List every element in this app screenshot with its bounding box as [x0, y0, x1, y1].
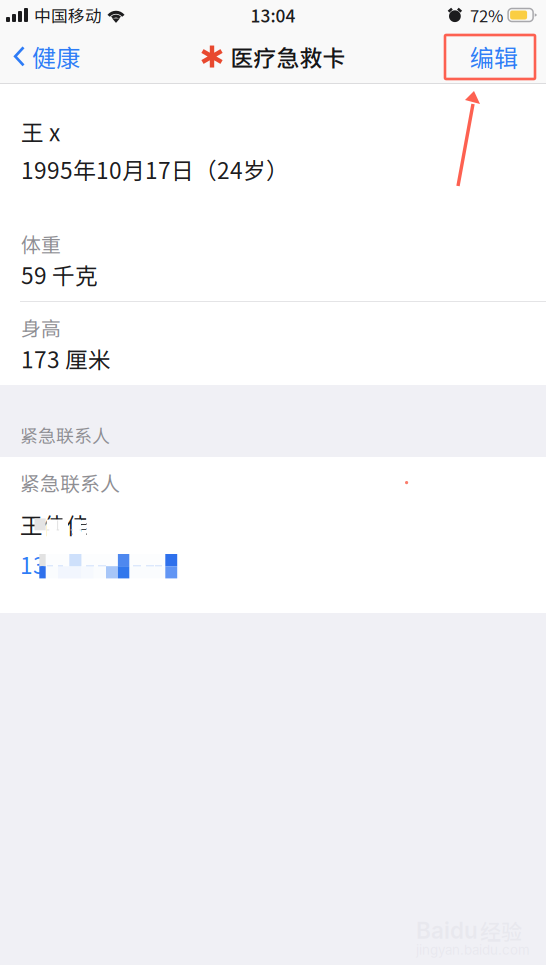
- staticText: 王 x: [21, 115, 60, 148]
- staticText: 紧急联系人: [20, 468, 120, 497]
- button[interactable]: 健康: [0, 32, 92, 80]
- staticText: 72%: [470, 3, 503, 27]
- staticText: 体重: [21, 229, 61, 258]
- staticText: 13:04: [250, 2, 295, 28]
- staticText: 1995年10月17日（24岁）: [21, 153, 289, 186]
- staticText: 173 厘米: [21, 342, 111, 375]
- staticText: 健康: [32, 39, 80, 74]
- staticText: 编辑: [470, 39, 518, 74]
- button[interactable]: 编辑: [456, 32, 546, 80]
- staticText: 中国移动: [34, 3, 102, 27]
- staticText: 王伟佳: [20, 508, 89, 541]
- staticText: 紧急联系人: [20, 422, 110, 448]
- staticText: 59 千克: [21, 258, 98, 291]
- staticText: 经验: [480, 915, 522, 946]
- staticText: 身高: [21, 313, 61, 342]
- staticText: Baidu: [416, 917, 478, 944]
- staticText: 13: [20, 548, 46, 581]
- staticText: 医疗急救卡: [230, 40, 345, 73]
